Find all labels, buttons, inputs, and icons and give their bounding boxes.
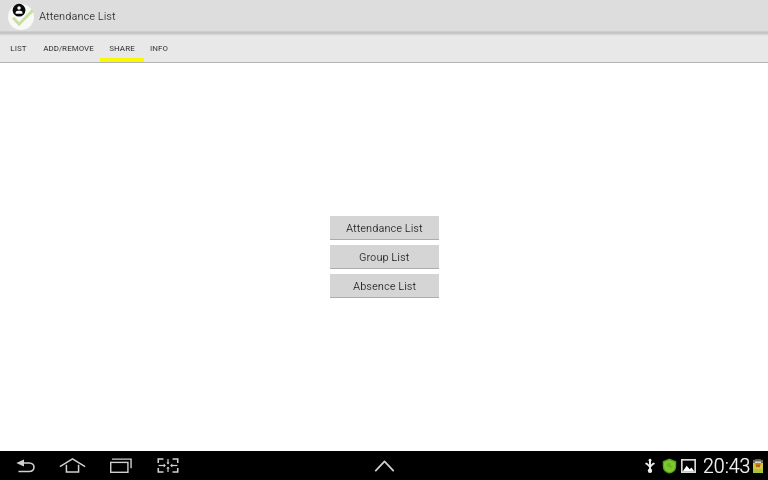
staticText: Absence List <box>353 280 417 293</box>
staticText: INFO <box>150 44 168 53</box>
staticText: LIST <box>10 44 27 53</box>
staticText: Group List <box>359 251 410 264</box>
staticText: 20:43 <box>703 455 751 478</box>
button[interactable]: Absence List <box>330 274 439 298</box>
button[interactable]: ADD/REMOVE <box>36 33 100 63</box>
button[interactable]: Group List <box>330 245 439 269</box>
button[interactable]: Recent apps <box>106 451 135 480</box>
button[interactable]: INFO <box>144 33 174 63</box>
button[interactable]: Home <box>58 451 87 480</box>
staticText: SHARE <box>109 44 135 53</box>
button[interactable]: Show notifications <box>370 451 399 480</box>
staticText: Attendance List <box>346 222 423 235</box>
staticText: Attendance List <box>39 10 116 23</box>
button[interactable]: LIST <box>1 33 36 63</box>
button[interactable]: Attendance List <box>0 0 768 33</box>
button[interactable]: Attendance List <box>330 216 439 240</box>
button[interactable]: SHARE <box>100 33 144 63</box>
staticText: ADD/REMOVE <box>43 44 94 53</box>
button[interactable]: Back <box>11 451 40 480</box>
button[interactable]: Screenshot <box>153 451 182 480</box>
